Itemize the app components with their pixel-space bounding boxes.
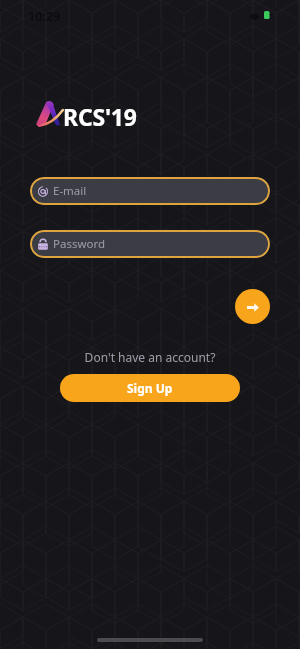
staticText: 10:29 <box>28 8 61 25</box>
staticText: RCS'19 <box>63 101 137 132</box>
staticText: Sign Up <box>127 380 173 396</box>
button[interactable]: Sign in <box>235 289 270 324</box>
staticText: E-mail <box>53 183 87 199</box>
staticText: Don't have an account? <box>0 349 300 365</box>
button[interactable]: Password <box>30 230 270 258</box>
staticText: Password <box>53 236 106 252</box>
button[interactable]: E-mail <box>30 177 270 205</box>
button[interactable]: Sign Up <box>60 374 240 402</box>
